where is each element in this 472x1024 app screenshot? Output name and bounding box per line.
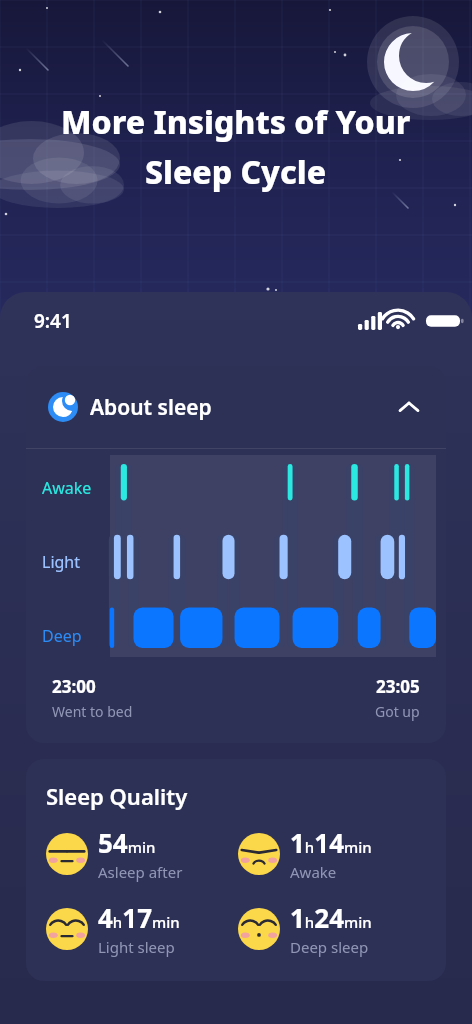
staticText: 1h24min [290,900,372,935]
staticText: Went to bed [52,702,133,721]
staticText: 1h14min [290,825,372,860]
staticText: Light sleep [98,937,175,957]
staticText: Deep sleep [290,937,369,957]
staticText: 23:05 [376,675,420,698]
button[interactable]: 54min [46,825,238,882]
staticText: 23:00 [52,675,96,698]
staticText: About sleep [90,393,212,422]
staticText: Asleep after [98,862,183,882]
staticText: 54min [98,825,156,860]
staticText: Got up [375,702,420,721]
staticText: More Insights of Your [61,100,411,144]
button[interactable]: 1h24min [238,900,430,957]
staticText: Sleep Quality [46,781,188,811]
button[interactable]: 1h14min [238,825,430,882]
staticText: Deep [42,625,82,647]
staticText: Sleep Cycle [145,150,327,194]
button[interactable]: Collapse about sleep [394,392,424,422]
button[interactable]: 4h17min [46,900,238,957]
staticText: Awake [42,477,92,499]
staticText: 9:41 [34,308,72,334]
button[interactable]: About sleep [26,366,446,448]
staticText: Light [42,551,81,573]
staticText: Awake [290,862,337,882]
staticText: 4h17min [98,900,180,935]
